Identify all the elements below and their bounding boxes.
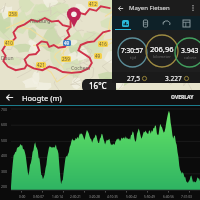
staticText: 3:20:28 [89, 195, 100, 199]
staticText: 700 [1, 107, 8, 112]
staticText: 27,5 [127, 74, 140, 83]
staticText: kilometer [153, 54, 171, 59]
staticText: 49 [95, 53, 101, 59]
staticText: 416 [99, 41, 107, 47]
staticText: 49 [64, 40, 70, 46]
staticText: 259 [62, 56, 70, 62]
staticText: 600 [1, 122, 8, 127]
staticText: 258 [9, 11, 17, 17]
staticText: 3.943 [181, 46, 199, 55]
staticText: 16°C [89, 80, 107, 91]
staticText: 1:40:14 [52, 195, 63, 199]
staticText: 206,96 [150, 44, 174, 54]
button[interactable]: More options [188, 3, 198, 13]
button[interactable]: Map [0, 0, 200, 90]
staticText: 0:50:07 [33, 195, 44, 199]
staticText: Daun [1, 55, 14, 62]
staticText: 7:30:57 [121, 46, 144, 55]
staticText: 0:00 [19, 195, 26, 199]
button[interactable]: List [139, 17, 152, 30]
button[interactable]: Laps [160, 17, 173, 30]
staticText: Nürburg [30, 18, 51, 25]
button[interactable]: Back [4, 92, 15, 103]
staticText: 4:10:35 [107, 195, 118, 199]
staticText: calorie [184, 55, 197, 60]
staticText: Mayen Fietsen [129, 4, 170, 12]
staticText: 410 [5, 40, 13, 46]
staticText: Cochem [71, 65, 91, 72]
staticText: 7:31:03 [181, 195, 192, 199]
button[interactable]: 7:30:57 [117, 37, 148, 68]
staticText: 3.227 [165, 74, 182, 83]
staticText: 5:50:49 [144, 195, 155, 199]
button[interactable]: 3.227 [163, 74, 191, 83]
staticText: 412 [89, 1, 97, 7]
staticText: 500 [1, 138, 8, 143]
button[interactable]: OVERLAY [169, 92, 196, 103]
button[interactable]: 3.943 [174, 37, 200, 68]
staticText: 2:30:21 [70, 195, 81, 199]
staticText: Hoogte (m) [22, 93, 62, 103]
staticText: OVERLAY [171, 94, 194, 101]
button[interactable]: Back [114, 2, 126, 14]
staticText: 5:00:42 [126, 195, 137, 199]
button[interactable]: 16°C [82, 79, 116, 92]
staticText: 400 [1, 153, 8, 158]
staticText: 421 [37, 62, 45, 68]
button[interactable]: Share [180, 17, 193, 30]
staticText: 6:40:56 [163, 195, 174, 199]
button[interactable]: 206,96 [145, 34, 179, 68]
staticText: 300 [1, 169, 8, 174]
staticText: 200 [1, 184, 8, 189]
button[interactable]: Stats [119, 17, 132, 30]
button[interactable]: 27,5 [121, 74, 153, 83]
staticText: tijd [130, 55, 136, 60]
